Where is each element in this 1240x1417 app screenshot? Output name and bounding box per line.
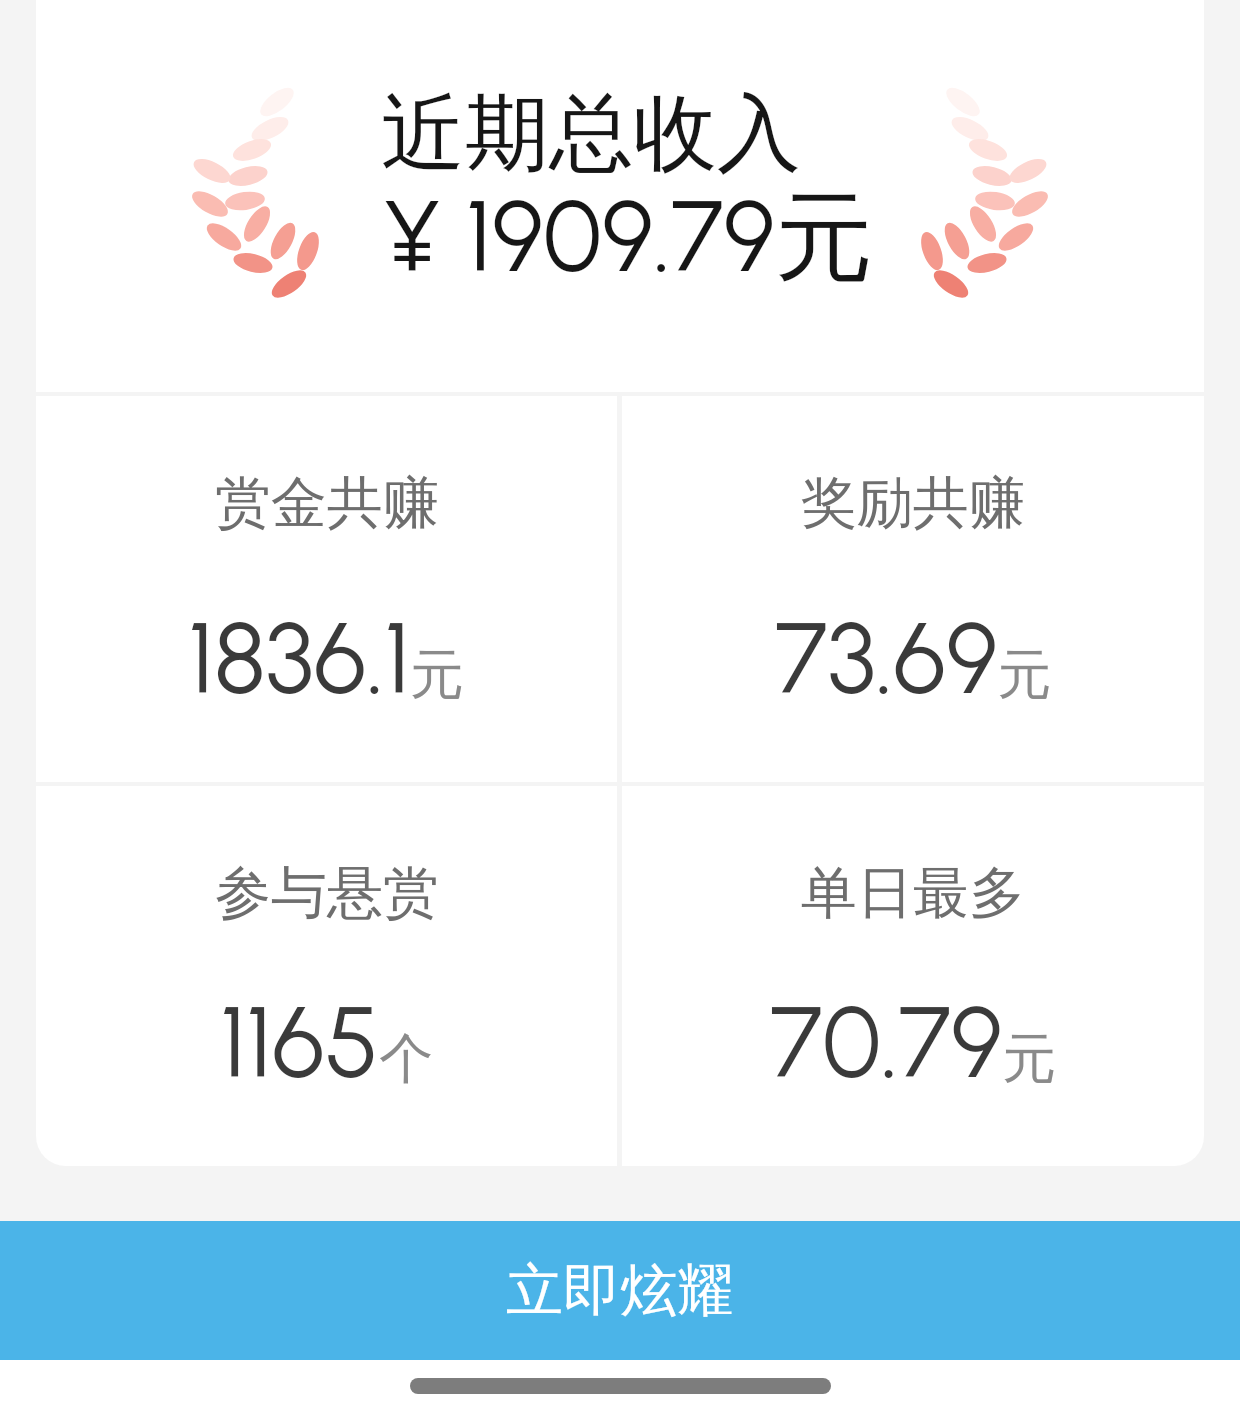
staticText: 73.69元 — [775, 600, 1052, 718]
staticText: 立即炫耀 — [506, 1255, 734, 1327]
staticText: 70.79元 — [770, 984, 1057, 1102]
staticText: 奖励共赚 — [801, 468, 1025, 539]
button[interactable]: 赏金共赚 — [36, 396, 617, 782]
staticText: 单日最多 — [801, 858, 1025, 929]
staticText: 赏金共赚 — [215, 468, 439, 539]
staticText: ¥ 1909.79元 — [382, 177, 873, 300]
staticText: 参与悬赏 — [215, 858, 439, 929]
staticText: 1836.1元 — [188, 600, 465, 718]
staticText: 近期总收入 — [381, 81, 801, 187]
button[interactable]: 立即炫耀 — [0, 1221, 1240, 1360]
staticText: 1165个 — [220, 984, 433, 1102]
button[interactable]: 参与悬赏 — [36, 786, 617, 1166]
button[interactable]: 单日最多 — [622, 786, 1204, 1166]
button[interactable]: 奖励共赚 — [622, 396, 1204, 782]
